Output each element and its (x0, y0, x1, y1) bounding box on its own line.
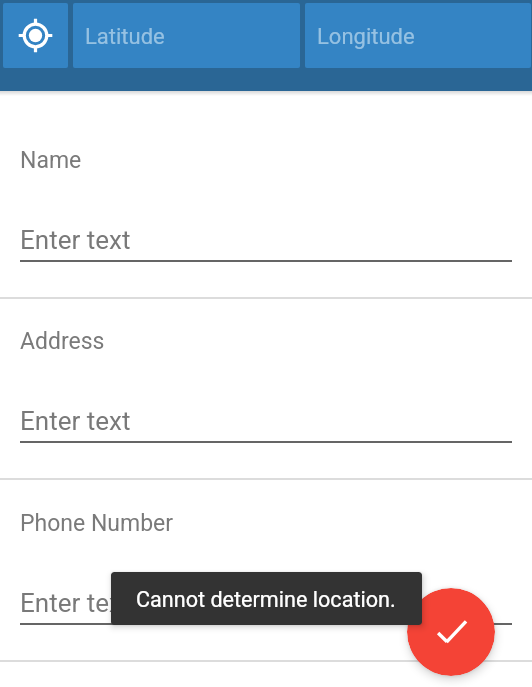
button[interactable]: Longitude (305, 3, 531, 68)
staticText: Address (20, 328, 105, 355)
button[interactable]: Latitude (73, 3, 300, 68)
button[interactable]: Enter text (20, 580, 512, 625)
staticText: Enter text (20, 588, 131, 618)
button[interactable]: Enter text (20, 398, 512, 443)
button[interactable]: Save (407, 588, 495, 676)
staticText: Longitude (317, 24, 415, 50)
button[interactable]: Enter text (20, 217, 512, 262)
staticText: Cannot determine location. (136, 587, 396, 612)
staticText: Enter text (20, 406, 131, 436)
staticText: Phone Number (20, 510, 174, 537)
staticText: Enter text (20, 225, 131, 255)
staticText: Latitude (85, 24, 165, 50)
button[interactable]: Use current location (3, 3, 68, 68)
staticText: Name (20, 147, 82, 174)
